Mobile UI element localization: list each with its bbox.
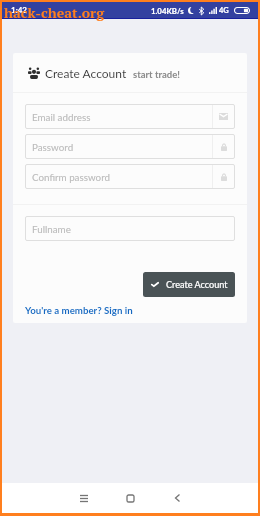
- button[interactable]: Create Account: [143, 272, 235, 297]
- button[interactable]: Confirm password: [25, 164, 235, 189]
- button[interactable]: Fullname: [25, 216, 235, 241]
- staticText: 1:42: [11, 5, 27, 15]
- staticText: You're a member? Sign in: [25, 304, 133, 316]
- button[interactable]: Home: [116, 484, 144, 512]
- staticText: hack-cheat.org: [4, 3, 105, 22]
- staticText: Create Account: [166, 279, 228, 290]
- staticText: 1.04KB/s: [151, 6, 184, 15]
- button[interactable]: Recent apps: [70, 484, 98, 512]
- staticText: 4G: [219, 6, 229, 15]
- button[interactable]: Back: [163, 484, 191, 512]
- staticText: Create Account: [45, 66, 127, 80]
- staticText: Fullname: [32, 223, 235, 235]
- button[interactable]: You're a member? Sign in: [25, 304, 133, 316]
- button[interactable]: Password: [25, 134, 235, 159]
- staticText: Email address: [32, 111, 212, 123]
- staticText: start trade!: [133, 69, 180, 80]
- button[interactable]: Email address: [25, 104, 235, 129]
- staticText: Password: [32, 141, 212, 153]
- staticText: Confirm password: [32, 171, 212, 183]
